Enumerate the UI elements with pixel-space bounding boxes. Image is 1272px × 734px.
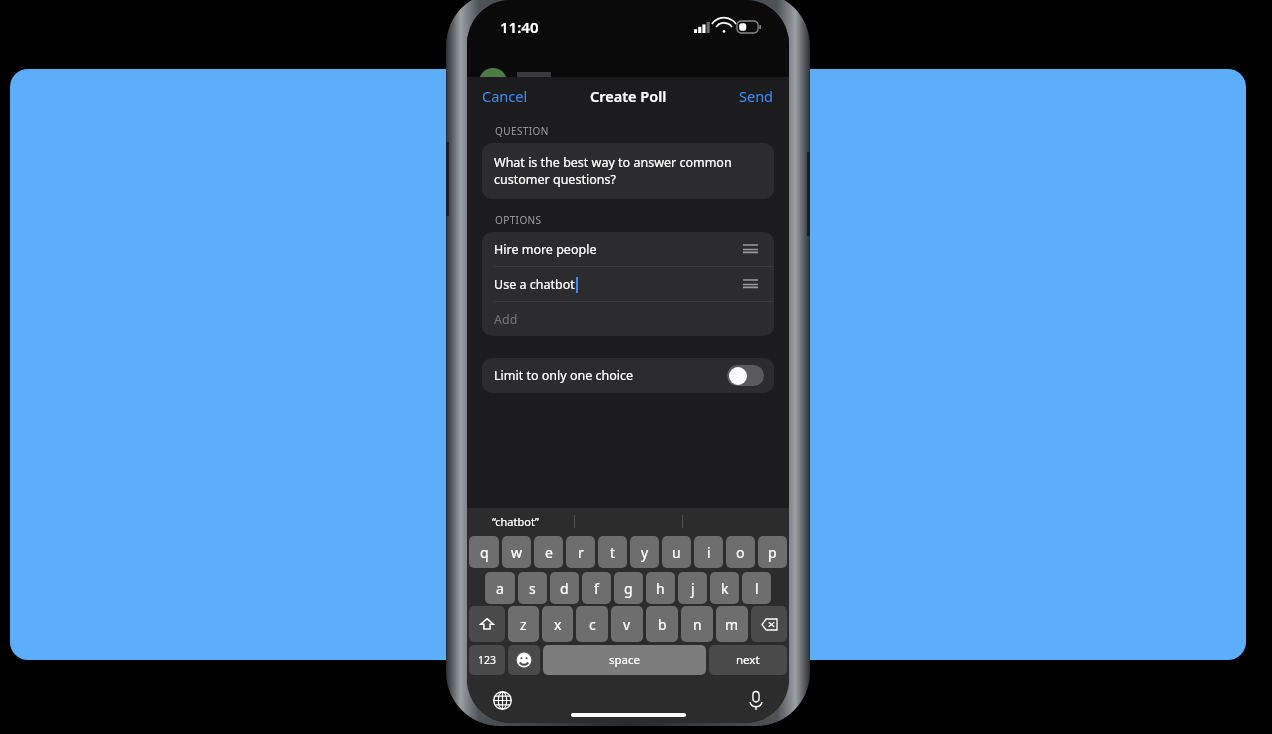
button[interactable]: s <box>518 572 547 604</box>
staticText: w <box>511 543 523 562</box>
button[interactable]: o <box>726 536 755 568</box>
button[interactable]: Limit to only one choice <box>482 358 774 393</box>
button[interactable]: k <box>710 572 739 604</box>
button[interactable]: What is the best way to answer common cu… <box>482 143 774 199</box>
button[interactable]: next <box>709 645 787 675</box>
staticText: c <box>589 615 596 634</box>
staticText: s <box>529 579 536 598</box>
button[interactable]: Hire more people <box>482 232 774 266</box>
staticText: next <box>736 652 760 668</box>
button[interactable]: i <box>694 536 723 568</box>
staticText: p <box>768 543 777 562</box>
staticText: Add <box>494 311 518 328</box>
staticText: l <box>755 579 759 598</box>
staticText: o <box>736 543 745 562</box>
button[interactable]: b <box>646 606 678 642</box>
button[interactable]: g <box>614 572 643 604</box>
staticText: “chatbot” <box>492 514 540 529</box>
button[interactable]: m <box>716 606 748 642</box>
button[interactable]: l <box>742 572 771 604</box>
staticText: t <box>610 543 616 562</box>
staticText: g <box>624 579 633 598</box>
button[interactable]: z <box>508 606 539 642</box>
staticText: k <box>721 579 729 598</box>
staticText: v <box>623 615 631 634</box>
staticText: Create Poll <box>590 86 667 106</box>
staticText: e <box>545 543 553 562</box>
staticText: h <box>656 579 665 598</box>
staticText: q <box>480 543 489 562</box>
button[interactable]: Shift <box>469 606 505 642</box>
button[interactable]: c <box>576 606 608 642</box>
button[interactable]: 123 <box>469 645 505 675</box>
button[interactable]: Backspace <box>751 606 787 642</box>
button[interactable]: Voice input <box>745 687 767 714</box>
button[interactable]: j <box>678 572 707 604</box>
button[interactable]: n <box>681 606 713 642</box>
button[interactable]: Add <box>482 302 774 336</box>
staticText: b <box>658 615 667 634</box>
staticText: Use a chatbot <box>494 276 575 293</box>
button[interactable]: p <box>758 536 787 568</box>
staticText: 123 <box>478 653 497 667</box>
button[interactable]: Reorder <box>739 241 762 258</box>
staticText: j <box>691 579 695 598</box>
staticText: y <box>641 543 649 562</box>
staticText: x <box>554 615 562 634</box>
button[interactable]: q <box>469 536 499 568</box>
staticText: d <box>560 579 569 598</box>
button[interactable]: a <box>485 572 515 604</box>
staticText: space <box>609 652 641 668</box>
button[interactable]: r <box>566 536 595 568</box>
staticText: n <box>693 615 702 634</box>
staticText: i <box>707 543 711 562</box>
button[interactable]: f <box>582 572 611 604</box>
staticText: Cancel <box>482 86 528 106</box>
button[interactable]: w <box>502 536 531 568</box>
staticText: QUESTION <box>495 124 549 138</box>
button[interactable]: Send <box>724 80 789 112</box>
staticText: u <box>672 543 681 562</box>
button[interactable]: Use a chatbot <box>482 267 774 301</box>
button[interactable]: h <box>646 572 675 604</box>
staticText: 11:40 <box>500 17 539 37</box>
staticText: What is the best way to answer common cu… <box>494 154 732 188</box>
staticText: Send <box>739 86 774 106</box>
staticText: Limit to only one choice <box>494 367 634 384</box>
staticText: r <box>578 543 584 562</box>
staticText: z <box>520 615 527 634</box>
button[interactable]: u <box>662 536 691 568</box>
staticText: Hire more people <box>494 241 597 258</box>
button[interactable]: e <box>534 536 563 568</box>
button[interactable]: t <box>598 536 627 568</box>
staticText: OPTIONS <box>495 213 542 227</box>
button[interactable]: d <box>550 572 579 604</box>
button[interactable]: Cancel <box>467 80 543 112</box>
button[interactable]: Reorder <box>739 276 762 293</box>
button[interactable]: Emoji <box>508 645 540 675</box>
button[interactable]: space <box>543 645 706 675</box>
button[interactable]: Change keyboard <box>489 687 516 714</box>
staticText: m <box>725 615 739 634</box>
staticText: a <box>496 579 504 598</box>
button[interactable]: x <box>542 606 573 642</box>
button[interactable]: y <box>630 536 659 568</box>
button[interactable]: v <box>611 606 643 642</box>
staticText: f <box>594 579 599 598</box>
